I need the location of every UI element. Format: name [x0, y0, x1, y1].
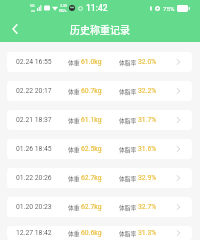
staticText: 32.2%: [138, 87, 157, 95]
staticText: 体脂率: [119, 58, 138, 66]
button[interactable]: 02.22 20:17: [7, 81, 192, 101]
staticText: 61.0kg: [81, 58, 102, 66]
staticText: 体重: [68, 87, 81, 95]
staticText: 11:42: [86, 3, 108, 13]
button[interactable]: Back: [0, 16, 29, 42]
staticText: KB/s: [59, 8, 67, 13]
staticText: 01.22 20:26: [16, 174, 52, 182]
button[interactable]: 01.20 20:23: [7, 197, 192, 217]
staticText: 60.6kg: [81, 229, 102, 237]
staticText: 62.7kg: [81, 174, 102, 182]
staticText: 体脂率: [119, 229, 138, 237]
staticText: 5G: [30, 3, 35, 8]
staticText: 体脂率: [119, 87, 138, 95]
staticText: 体重: [68, 58, 81, 66]
staticText: 31.7%: [138, 116, 157, 124]
staticText: 体脂率: [119, 203, 138, 211]
staticText: 体重: [68, 145, 81, 153]
staticText: vo: [31, 8, 35, 13]
button[interactable]: 02.24 16:55: [7, 52, 192, 72]
staticText: 02.24 16:55: [16, 58, 52, 66]
button[interactable]: 01.26 18:45: [7, 139, 192, 159]
staticText: 体重: [68, 174, 81, 182]
staticText: 体重: [68, 203, 81, 211]
staticText: 体重: [68, 229, 81, 237]
button[interactable]: 02.21 18:37: [7, 110, 192, 130]
staticText: 32.7%: [138, 203, 157, 211]
staticText: 75%: [163, 5, 175, 12]
staticText: 3.90: [60, 3, 67, 8]
staticText: 60.7kg: [81, 87, 102, 95]
staticText: 32.9%: [138, 174, 157, 182]
staticText: 体脂率: [119, 145, 138, 153]
staticText: 12.27 18:42: [16, 229, 52, 237]
staticText: 31.3%: [138, 229, 157, 237]
staticText: 32.0%: [138, 58, 157, 66]
staticText: 62.5kg: [81, 145, 102, 153]
staticText: 31.6%: [138, 145, 157, 153]
button[interactable]: 12.27 18:42: [7, 226, 192, 240]
button[interactable]: 01.22 20:26: [7, 168, 192, 188]
staticText: 02.21 18:37: [16, 116, 52, 124]
staticText: 01.20 20:23: [16, 203, 52, 211]
staticText: 62.7kg: [81, 203, 102, 211]
staticText: 01.26 18:45: [16, 145, 52, 153]
staticText: 02.22 20:17: [16, 87, 52, 95]
staticText: 历史称重记录: [70, 22, 130, 36]
staticText: 体重: [68, 116, 81, 124]
staticText: 体脂率: [119, 174, 138, 182]
staticText: 体脂率: [119, 116, 138, 124]
staticText: 61.1kg: [81, 116, 102, 124]
